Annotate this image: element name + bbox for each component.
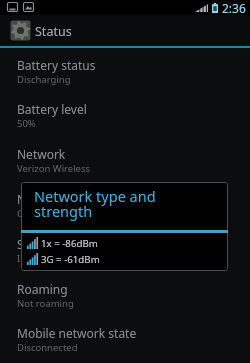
staticText: Mobile network state — [17, 325, 137, 341]
staticText: Not roaming — [17, 297, 74, 310]
button[interactable]: Network type and strength — [0, 191, 250, 235]
button[interactable]: Service state — [0, 236, 250, 280]
staticText: Battery status — [17, 57, 96, 73]
button[interactable]: Battery level — [0, 101, 250, 145]
staticText: Network — [17, 146, 66, 162]
staticText: 2:36 — [222, 0, 246, 15]
button[interactable]: Settings — [0, 15, 250, 46]
staticText: 1x = -86dBm — [41, 237, 98, 250]
staticText: 50% — [17, 117, 36, 130]
button[interactable]: Mobile network state — [0, 325, 250, 363]
staticText: Network type and strength — [17, 191, 169, 207]
button[interactable]: Battery status — [0, 57, 250, 101]
staticText: Verizon Wireless — [17, 162, 91, 175]
staticText: 3G = -61dBm — [41, 253, 100, 266]
staticText: CDMA - EvDo rev. A — [17, 207, 103, 220]
button[interactable]: Network — [0, 146, 250, 190]
staticText: In service — [17, 252, 60, 265]
staticText: Service state — [17, 236, 89, 252]
staticText: Roaming — [17, 281, 68, 297]
staticText: Battery level — [17, 101, 87, 117]
staticText: Status — [35, 23, 72, 40]
button[interactable]: 1x = -86dBm — [21, 235, 228, 251]
staticText: Discharging — [17, 73, 71, 86]
button[interactable]: Roaming — [0, 281, 250, 325]
staticText: Disconnected — [17, 341, 78, 354]
staticText: Network type and strength — [34, 186, 159, 221]
other: Settings — [10, 20, 31, 41]
button[interactable]: 3G = -61dBm — [21, 251, 228, 267]
